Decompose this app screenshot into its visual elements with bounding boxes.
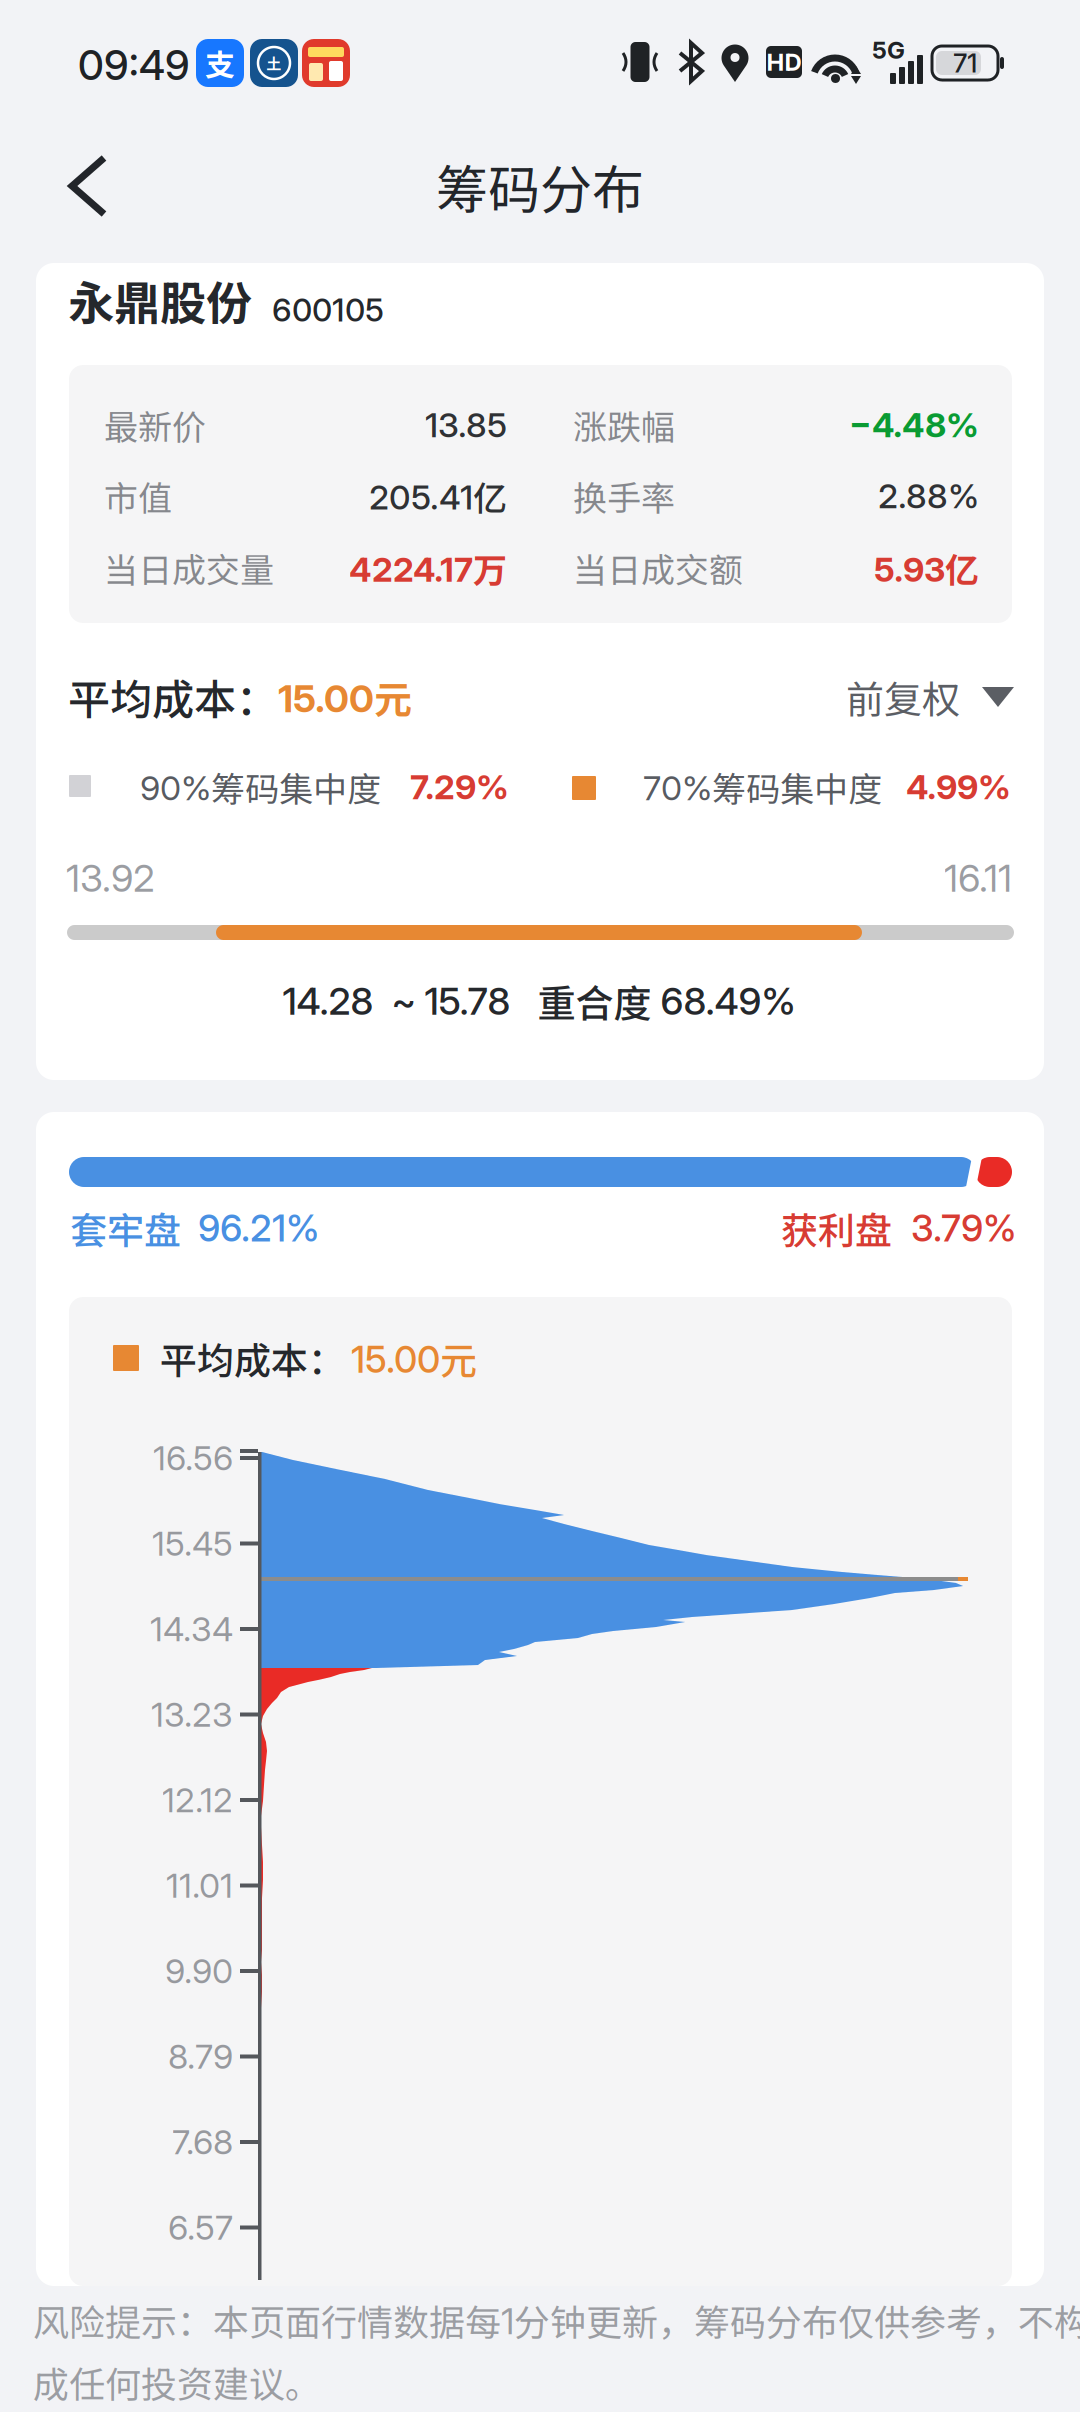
staticText: 15.78 [424, 978, 510, 1024]
staticText: 13.85 [425, 404, 507, 445]
staticText: 5.93亿 [874, 543, 979, 593]
staticText: 3.79% [911, 1206, 1016, 1250]
staticText: 15.45 [152, 1523, 233, 1564]
staticText: 风险提示：本页面行情数据每1分钟更新，筹码分布仅供参考，不构 [33, 2294, 1080, 2346]
staticText: 96.21% [198, 1206, 319, 1250]
staticText: 16.11 [944, 855, 1012, 901]
staticText: 8.79 [168, 2036, 233, 2077]
staticText: 12.12 [162, 1779, 233, 1820]
staticText: 14.28 [282, 978, 373, 1024]
staticText: 当日成交额 [573, 543, 743, 593]
staticText: 14.34 [150, 1608, 233, 1649]
button[interactable]: 前复权 [846, 669, 1014, 724]
staticText: 600105 [272, 291, 384, 329]
staticText: 15.00元 [351, 1331, 477, 1385]
button[interactable]: Back [26, 136, 146, 236]
staticText: 205.41亿 [369, 471, 507, 521]
staticText: 当日成交量 [104, 543, 274, 593]
staticText: 涨跌幅 [573, 400, 675, 450]
staticText: 7.29% [410, 766, 509, 807]
staticText: 16.56 [153, 1437, 233, 1478]
staticText: 09:49 [78, 40, 190, 90]
staticText: 套牢盘 [70, 1201, 181, 1255]
staticText: 71 [953, 47, 977, 79]
staticText: 土 [266, 52, 281, 74]
staticText: 15.00元 [278, 669, 412, 724]
staticText: 成任何投资建议。 [33, 2356, 321, 2408]
staticText: 6.57 [168, 2207, 233, 2248]
staticText: 68.49% [660, 978, 795, 1024]
staticText: 永鼎股份 [68, 267, 252, 333]
staticText: 换手率 [573, 471, 675, 521]
staticText: 筹码分布 [436, 148, 644, 224]
staticText: 重合度 [510, 973, 660, 1028]
staticText: 市值 [104, 471, 172, 521]
staticText: 平均成本： [160, 1331, 345, 1385]
staticText: HD [766, 47, 801, 76]
staticText: 平均成本： [68, 667, 278, 727]
staticText: 70%筹码集中度 [643, 762, 882, 812]
staticText: 2.88% [878, 475, 979, 516]
staticText: 获利盘 [781, 1201, 892, 1255]
staticText: 支 [205, 41, 235, 85]
staticText: 前复权 [846, 669, 960, 724]
staticText: ~ [373, 978, 424, 1024]
staticText: 13.92 [66, 855, 155, 901]
staticText: 4.99% [906, 766, 1011, 807]
staticText: 5G [872, 35, 905, 64]
staticText: 4224.17万 [349, 543, 507, 593]
staticText: 最新价 [104, 400, 206, 450]
staticText: 7.68 [172, 2121, 233, 2162]
staticText: 11.01 [166, 1865, 233, 1906]
staticText: −4.48% [849, 404, 979, 445]
staticText: 9.90 [165, 1950, 233, 1991]
staticText: 90%筹码集中度 [140, 762, 381, 812]
staticText: 13.23 [151, 1694, 233, 1735]
